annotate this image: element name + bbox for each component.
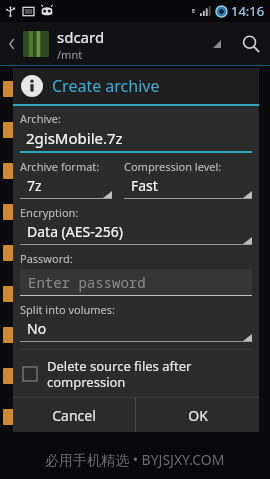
- button[interactable]: Up: [4, 36, 20, 52]
- staticText: /mnt: [57, 47, 83, 62]
- button[interactable]: OK: [136, 398, 259, 432]
- staticText: E: [192, 7, 196, 15]
- button[interactable]: Cancel: [13, 398, 135, 432]
- button[interactable]: Sort: [208, 35, 226, 53]
- staticText: Split into volumes:: [20, 302, 116, 317]
- staticText: Archive:: [20, 111, 62, 126]
- staticText: 2gisMobile.7z: [26, 128, 123, 148]
- staticText: Data (AES-256): [27, 222, 123, 241]
- staticText: No: [27, 319, 47, 338]
- staticText: 必用手机精选 • BYJSJXY.COM: [45, 450, 225, 469]
- staticText: OK: [188, 406, 208, 425]
- staticText: Archive format:: [20, 159, 100, 174]
- staticText: sdcard: [57, 27, 105, 47]
- staticText: 14:16: [231, 2, 265, 20]
- staticText: Fast: [131, 176, 158, 195]
- staticText: Compression level:: [124, 159, 222, 174]
- button[interactable]: Delete source files after compression: [13, 350, 259, 397]
- button[interactable]: No: [20, 319, 252, 342]
- staticText: Cancel: [52, 406, 96, 425]
- staticText: Delete source files after compression: [47, 357, 192, 390]
- staticText: Password:: [20, 251, 73, 266]
- button[interactable]: Enter password: [20, 269, 252, 296]
- button[interactable]: 7z: [20, 176, 112, 199]
- staticText: Encryption:: [20, 205, 79, 220]
- staticText: Create archive: [52, 75, 160, 97]
- button[interactable]: Data (AES-256): [20, 222, 252, 245]
- staticText: Enter password: [28, 273, 146, 292]
- staticText: 7z: [27, 176, 42, 195]
- button[interactable]: Fast: [124, 176, 252, 199]
- button[interactable]: Search: [236, 29, 266, 59]
